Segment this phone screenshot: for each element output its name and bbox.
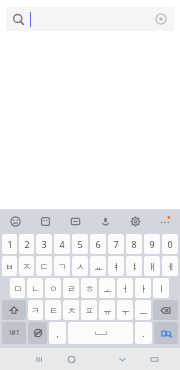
staticText: ㅔ <box>166 261 175 272</box>
button[interactable]: ㄱ <box>54 256 70 276</box>
button[interactable]: Change language <box>28 322 47 344</box>
staticText: ㅣ <box>157 283 166 294</box>
button[interactable]: ㅈ <box>19 256 34 276</box>
staticText: ㅂ <box>5 261 14 272</box>
button[interactable]: ㅇ <box>45 278 61 298</box>
button[interactable]: ㅅ <box>72 256 88 276</box>
staticText: ㅁ <box>13 283 22 294</box>
button[interactable]: ㅗ <box>99 278 115 298</box>
button[interactable]: Settings <box>120 209 150 233</box>
staticText: ㅗ <box>103 283 112 294</box>
button[interactable]: ㅋ <box>28 300 43 320</box>
button[interactable]: ㅔ <box>162 256 178 276</box>
button[interactable]: ㅕ <box>108 256 124 276</box>
button[interactable]: Home <box>55 348 87 370</box>
staticText: 8 <box>131 238 137 250</box>
button[interactable]: 8 <box>126 234 142 254</box>
staticText: 9 <box>149 238 155 250</box>
button[interactable]: ㅂ <box>2 256 17 276</box>
staticText: ㅌ <box>49 305 58 316</box>
staticText: ㅋ <box>31 305 40 316</box>
button[interactable]: ㅎ <box>81 278 97 298</box>
button[interactable]: ㅛ <box>90 256 106 276</box>
staticText: ㅜ <box>121 305 130 316</box>
staticText: ㅊ <box>67 305 76 316</box>
button[interactable]: Switch keyboard <box>138 348 170 370</box>
button[interactable]: 4 <box>54 234 70 254</box>
staticText: ㅅ <box>76 261 85 272</box>
button[interactable]: ㅡ <box>135 300 151 320</box>
button[interactable]: ㅓ <box>117 278 133 298</box>
staticText: ㅍ <box>85 305 94 316</box>
button[interactable]: Shift <box>2 300 26 320</box>
staticText: ㅡ <box>139 305 148 316</box>
button[interactable]: Clipboard <box>60 209 90 233</box>
button[interactable]: 0 <box>162 234 178 254</box>
staticText: 0 <box>167 238 173 250</box>
button[interactable]: ㄹ <box>63 278 79 298</box>
button[interactable]: ㅌ <box>45 300 61 320</box>
button[interactable]: 6 <box>90 234 106 254</box>
staticText: ㅐ <box>148 261 157 272</box>
button[interactable]: ㄷ <box>36 256 52 276</box>
button[interactable]: 5 <box>72 234 88 254</box>
button[interactable]: . <box>135 322 152 344</box>
button[interactable]: 9 <box>144 234 160 254</box>
button[interactable]: Search <box>154 322 178 344</box>
staticText: ㅇ <box>49 283 58 294</box>
staticText: 4 <box>59 238 65 250</box>
button[interactable]: Stickers <box>30 209 60 233</box>
button[interactable]: 3 <box>36 234 52 254</box>
button[interactable]: 7 <box>108 234 124 254</box>
staticText: ㄹ <box>67 283 76 294</box>
staticText: ㄷ <box>40 261 49 272</box>
button[interactable]: ㅍ <box>81 300 97 320</box>
button[interactable]: Clear <box>154 12 168 26</box>
staticText: ㅑ <box>130 261 139 272</box>
button[interactable]: 2 <box>19 234 34 254</box>
button[interactable]: More options <box>150 209 180 233</box>
staticText: ㅠ <box>103 305 112 316</box>
button[interactable]: ㅊ <box>63 300 79 320</box>
staticText: ㄱ <box>58 261 67 272</box>
staticText: ㅎ <box>85 283 94 294</box>
button[interactable]: Recents <box>23 348 55 370</box>
button[interactable]: Hide keyboard <box>106 348 138 370</box>
button[interactable]: ㅁ <box>10 278 25 298</box>
button[interactable]: Backspace <box>153 300 178 320</box>
staticText: 2 <box>24 238 30 250</box>
staticText: !#1 <box>9 328 20 338</box>
staticText: 1 <box>7 238 13 250</box>
staticText: , <box>56 328 59 339</box>
button[interactable]: ㅐ <box>144 256 160 276</box>
staticText: ㅛ <box>94 261 103 272</box>
button[interactable]: Space <box>68 322 133 344</box>
button[interactable]: 1 <box>2 234 17 254</box>
button[interactable]: , <box>49 322 66 344</box>
button[interactable]: Emoji <box>0 209 30 233</box>
staticText: 6 <box>95 238 101 250</box>
button[interactable]: ㅜ <box>117 300 133 320</box>
button[interactable]: ㅣ <box>153 278 169 298</box>
button[interactable]: Voice input <box>90 209 120 233</box>
button[interactable]: ㅏ <box>135 278 151 298</box>
staticText: . <box>142 328 145 339</box>
staticText: 3 <box>41 238 47 250</box>
button[interactable]: ㅑ <box>126 256 142 276</box>
staticText: 5 <box>77 238 83 250</box>
button[interactable]: ㅠ <box>99 300 115 320</box>
button[interactable]: Search <box>6 7 174 31</box>
staticText: ㅈ <box>22 261 31 272</box>
staticText: ㅕ <box>112 261 121 272</box>
staticText: 7 <box>113 238 119 250</box>
button[interactable]: !#1 <box>2 322 26 344</box>
other: Search <box>12 13 25 26</box>
button[interactable]: ㄴ <box>27 278 43 298</box>
staticText: ㅓ <box>121 283 130 294</box>
staticText: ㅏ <box>139 283 148 294</box>
staticText: ㄴ <box>31 283 40 294</box>
